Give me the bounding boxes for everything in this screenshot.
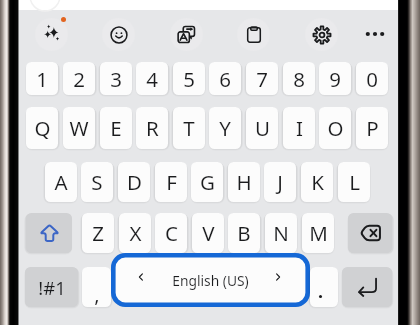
staticText: X — [129, 219, 142, 247]
staticText: N — [273, 219, 289, 247]
staticText: Q — [34, 114, 51, 142]
staticText: 9 — [329, 65, 341, 93]
button[interactable]: N — [265, 213, 297, 253]
staticText: !#1 — [38, 275, 66, 300]
staticText: I — [296, 114, 303, 142]
staticText: K — [311, 168, 324, 196]
button[interactable]: 8 — [283, 62, 315, 95]
button[interactable]: !#1 — [25, 267, 78, 307]
button[interactable]: F — [155, 162, 187, 202]
staticText: U — [255, 114, 270, 142]
button[interactable]: Z — [82, 213, 114, 253]
staticText: 5 — [183, 65, 195, 93]
staticText: M — [309, 219, 328, 247]
staticText: R — [146, 114, 159, 142]
button[interactable]: X — [119, 213, 151, 253]
button[interactable]: M — [302, 213, 334, 253]
button[interactable]: 3 — [100, 62, 132, 95]
staticText: 8 — [293, 65, 305, 93]
button[interactable]: 9 — [319, 62, 351, 95]
button[interactable]: Emoji — [102, 18, 135, 51]
staticText: B — [237, 219, 251, 247]
button[interactable]: 1 — [26, 62, 58, 95]
staticText: H — [236, 168, 252, 196]
staticText: A — [54, 168, 68, 196]
staticText: 3 — [110, 65, 122, 93]
button[interactable]: J — [264, 162, 296, 202]
staticText: T — [183, 114, 195, 142]
button[interactable]: P — [356, 107, 388, 149]
button[interactable]: T — [173, 107, 205, 149]
staticText: 6 — [219, 65, 231, 93]
button[interactable]: Enter — [342, 267, 392, 307]
staticText: 1 — [36, 65, 48, 93]
button[interactable]: Translate — [170, 18, 203, 51]
button[interactable]: A — [45, 162, 77, 202]
staticText: , — [94, 281, 100, 307]
staticText: C — [165, 219, 178, 247]
button[interactable]: C — [155, 213, 187, 253]
button[interactable]: 5 — [173, 62, 205, 95]
button[interactable]: 2 — [63, 62, 95, 95]
button[interactable]: H — [228, 162, 260, 202]
button[interactable]: 7 — [246, 62, 278, 95]
button[interactable]: 4 — [136, 62, 168, 95]
staticText: D — [127, 168, 142, 196]
staticText: S — [91, 168, 103, 196]
button[interactable]: L — [338, 162, 370, 202]
button[interactable]: Y — [209, 107, 241, 149]
staticText: L — [349, 168, 360, 196]
button[interactable]: 0 — [356, 62, 388, 95]
button[interactable]: Q — [26, 107, 58, 149]
button[interactable]: E — [100, 107, 132, 149]
staticText: F — [166, 168, 177, 196]
button[interactable]: G — [191, 162, 223, 202]
button[interactable]: Space, English (US) — [113, 255, 307, 305]
staticText: W — [69, 114, 89, 142]
button[interactable]: S — [81, 162, 113, 202]
button[interactable]: W — [63, 107, 95, 149]
button[interactable]: K — [301, 162, 333, 202]
button[interactable]: O — [319, 107, 351, 149]
staticText: J — [277, 168, 283, 196]
staticText: G — [200, 168, 215, 196]
button[interactable]: R — [136, 107, 168, 149]
button[interactable]: U — [246, 107, 278, 149]
staticText: E — [110, 114, 122, 142]
button[interactable]: More options — [358, 18, 392, 50]
staticText: 0 — [366, 65, 378, 93]
button[interactable]: 6 — [209, 62, 241, 95]
button[interactable]: Shift — [26, 213, 72, 253]
button[interactable]: Backspace — [348, 213, 392, 253]
staticText: 4 — [146, 65, 158, 93]
staticText: English (US) — [172, 271, 249, 290]
button[interactable]: V — [192, 213, 224, 253]
staticText: 2 — [73, 65, 85, 93]
button[interactable]: D — [118, 162, 150, 202]
staticText: O — [327, 114, 344, 142]
button[interactable]: , — [82, 267, 111, 307]
button[interactable] — [310, 267, 338, 307]
staticText: V — [202, 219, 215, 247]
staticText: Y — [219, 114, 231, 142]
staticText: Z — [92, 219, 104, 247]
button[interactable]: AI assist — [35, 18, 68, 51]
button[interactable]: B — [228, 213, 260, 253]
button[interactable]: Settings — [305, 18, 338, 51]
staticText: P — [366, 114, 379, 142]
staticText: 7 — [256, 65, 268, 93]
button[interactable]: I — [283, 107, 315, 149]
button[interactable]: Clipboard — [237, 18, 270, 51]
